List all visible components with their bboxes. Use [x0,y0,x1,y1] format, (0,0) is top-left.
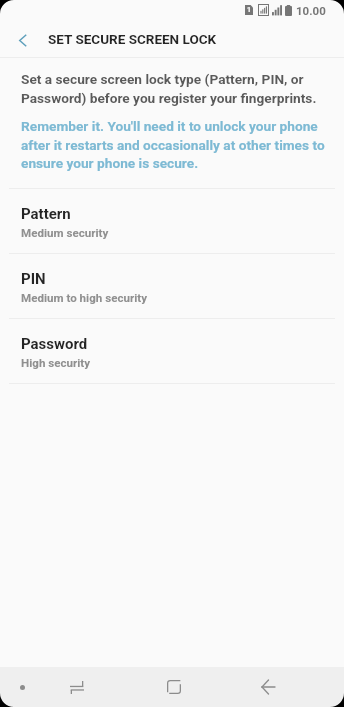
button[interactable]: Home [150,667,198,707]
button[interactable]: Back [244,667,292,707]
staticText: Set a secure screen lock type (Pattern, … [21,71,326,106]
button[interactable]: Pattern [0,189,344,253]
staticText: High security [21,356,91,370]
staticText: Password [21,335,88,353]
staticText: 10.00 [296,4,326,17]
button[interactable]: PIN [0,254,344,318]
button[interactable]: Password [0,319,344,383]
button[interactable]: More options [4,667,40,707]
button[interactable]: Navigate up [0,20,46,57]
staticText: 1 [247,6,252,14]
staticText: Medium to high security [21,291,148,305]
staticText: SET SECURE SCREEN LOCK [48,31,217,47]
staticText: PIN [21,270,46,288]
staticText: Medium security [21,226,109,240]
button[interactable]: Recent apps [53,667,101,707]
staticText: Pattern [21,205,71,223]
staticText: Remember it. You'll need it to unlock yo… [21,118,326,171]
